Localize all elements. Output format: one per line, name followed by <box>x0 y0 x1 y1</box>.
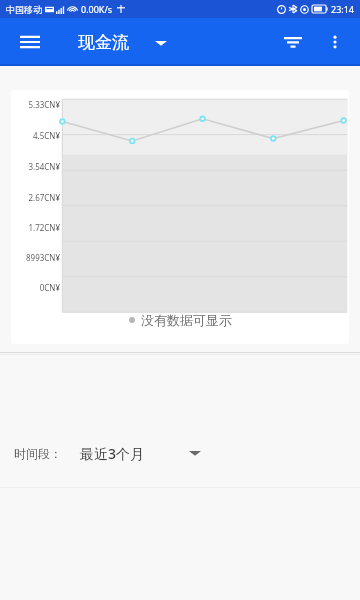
staticText: 2.67CN¥ <box>28 192 60 203</box>
staticText: 5.33CN¥ <box>28 99 60 110</box>
staticText: 没有数据可显示 <box>141 312 232 328</box>
staticText: 3.54CN¥ <box>28 161 60 172</box>
staticText: 时间段： <box>14 446 62 461</box>
staticText: 0.00K/s <box>81 3 113 15</box>
staticText: 23:14 <box>331 3 355 15</box>
staticText: 1.72CN¥ <box>28 222 60 233</box>
button[interactable]: 现金流 <box>72 28 173 57</box>
button[interactable]: Open navigation menu <box>10 22 50 62</box>
staticText: 0CN¥ <box>39 282 60 293</box>
staticText: 最近3个月 <box>80 444 145 463</box>
staticText: 现金流 <box>78 32 129 53</box>
button[interactable]: More options <box>314 21 356 63</box>
button[interactable]: 时间段： <box>0 433 360 473</box>
button[interactable]: Filter <box>272 21 314 63</box>
staticText: 4.5CN¥ <box>32 130 60 141</box>
staticText: 8993CN¥ <box>25 252 60 263</box>
staticText: 中国移动 <box>6 4 42 15</box>
button[interactable]: 5.33CN¥ <box>11 90 349 344</box>
